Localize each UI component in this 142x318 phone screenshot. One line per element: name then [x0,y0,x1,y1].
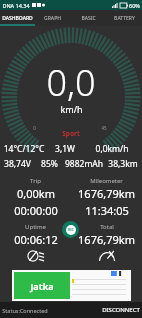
staticText: 3,1W [48,143,82,155]
button[interactable]: GRAPH [35,10,70,26]
staticText: 9882mAh [64,158,104,170]
staticText: Status:Connected [2,307,48,314]
staticText: Trip [30,177,41,185]
button[interactable]: Headlight [0,247,71,265]
button[interactable]: BASIC [70,10,106,26]
staticText: 1676,79km [78,186,135,201]
staticText: BATTERY [114,15,135,22]
staticText: 11:34:05 [85,203,129,218]
staticText: GRAPH [44,15,61,22]
staticText: 0,0km/h [82,143,142,155]
staticText: Jatka [30,280,54,292]
staticText: 45 [101,125,107,131]
staticText: Sport [0,129,142,138]
staticText: 85% [35,158,64,170]
staticText: 00:06:12 [14,232,58,247]
staticText: 0,0 [46,58,96,107]
staticText: 60% [129,2,140,9]
staticText: Total [100,223,114,231]
staticText: Mileometer [90,177,123,185]
staticText: REC [68,228,74,232]
staticText: km/h [60,103,83,115]
staticText: DASHBOARD [2,15,33,22]
staticText: 1676,79km [78,232,135,247]
button[interactable]: Jatka [14,272,70,299]
button[interactable]: Speedometer [71,247,142,265]
staticText: 00:00:00 [14,203,58,218]
button[interactable]: BATTERY [106,10,142,26]
staticText: 0 [33,125,36,131]
staticText: BASIC [81,15,96,22]
button[interactable]: DASHBOARD [0,10,35,26]
staticText: 38,74V [0,158,35,170]
button[interactable]: Record [62,221,79,238]
staticText: 14°C/12°C [0,143,48,155]
staticText: DISCONNECT [102,306,140,314]
staticText: DNA 14.34 [2,2,30,9]
staticText: 38,3km [104,158,142,170]
staticText: Uptime [25,223,46,231]
staticText: 0,00km [17,186,55,201]
